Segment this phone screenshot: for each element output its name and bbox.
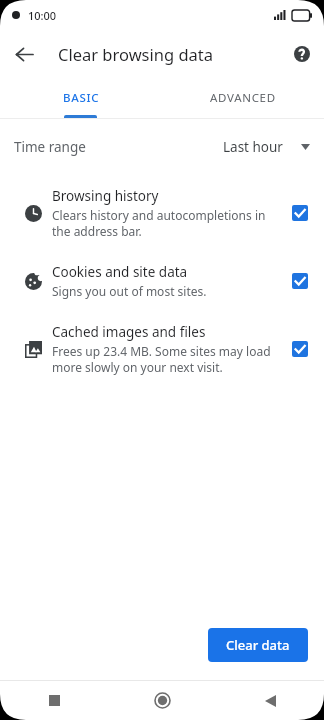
staticText: Clear browsing data [58,43,214,65]
button[interactable]: Back [8,38,40,70]
button[interactable]: Help [286,38,318,70]
staticText: Clear data [226,636,290,654]
button[interactable]: Cached images and files checkbox [290,339,310,359]
button[interactable]: Clear data [208,628,308,662]
button[interactable]: Recents [0,681,108,720]
button[interactable]: ADVANCED [162,78,324,118]
staticText: Frees up 23.4 MB. Some sites may load mo… [52,343,271,375]
button[interactable]: Time range [0,119,324,175]
staticText: BASIC [63,90,100,106]
staticText: ADVANCED [210,90,276,106]
button[interactable]: Browsing history [0,175,324,251]
button[interactable]: Cached images and files [0,311,324,387]
button[interactable]: Home [108,681,216,720]
button[interactable]: Back [216,681,324,720]
staticText: Cookies and site data [52,263,188,281]
button[interactable]: BASIC [0,78,162,118]
button[interactable]: Browsing history checkbox [290,203,310,223]
staticText: 10:00 [28,8,57,23]
staticText: Last hour [223,138,283,156]
staticText: Browsing history [52,187,159,205]
staticText: Time range [14,138,86,156]
button[interactable]: Cookies and site data [0,251,324,311]
staticText: Clears history and autocompletions in th… [52,207,266,239]
button[interactable]: Cookies and site data checkbox [290,271,310,291]
staticText: Signs you out of most sites. [52,283,207,299]
staticText: Cached images and files [52,323,206,341]
